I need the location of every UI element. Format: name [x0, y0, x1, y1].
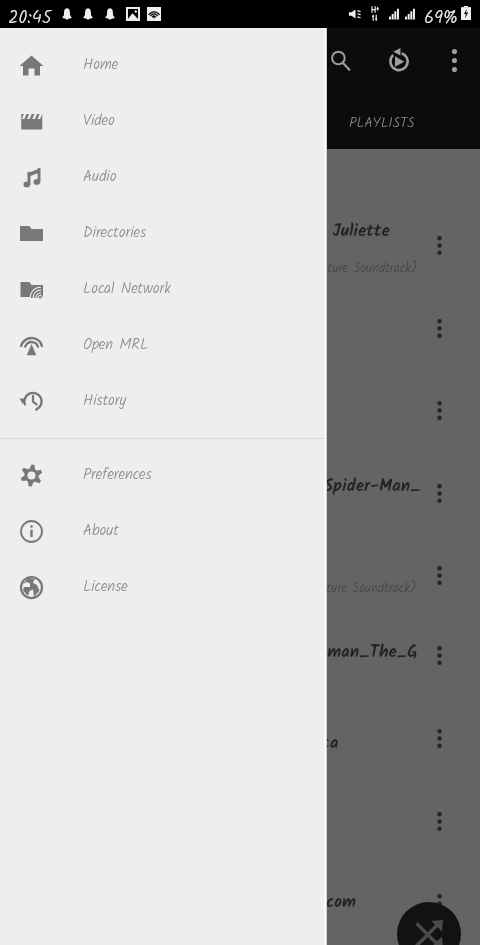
staticText: (Original Motion Picture Soundtrack) — [218, 578, 417, 599]
button[interactable]: Open MRL — [0, 317, 327, 373]
button[interactable]: History — [0, 373, 327, 429]
button[interactable]: PLAYLISTS — [327, 100, 437, 145]
button[interactable]: More options — [430, 36, 478, 84]
staticText: Roméo et Juliette — [256, 218, 390, 245]
button[interactable]: About — [0, 503, 327, 559]
button[interactable]: Play last playlist — [375, 36, 423, 84]
button[interactable]: Item options — [423, 722, 455, 754]
button[interactable] — [0, 780, 480, 862]
button[interactable]: License — [0, 559, 327, 615]
button[interactable] — [0, 862, 480, 944]
staticText: Directories — [83, 221, 147, 245]
staticText: example.com — [261, 889, 356, 916]
button[interactable] — [0, 614, 480, 696]
button[interactable]: Item options — [423, 559, 455, 591]
button[interactable]: Item options — [423, 394, 455, 426]
button[interactable]: Home — [0, 37, 327, 93]
staticText: Preferences — [83, 463, 152, 487]
staticText: Local Network — [83, 277, 172, 301]
button[interactable]: Audio — [0, 149, 327, 205]
button[interactable]: Preferences — [0, 447, 327, 503]
staticText: About — [83, 519, 119, 543]
button[interactable] — [0, 534, 480, 616]
button[interactable]: Local Network — [0, 261, 327, 317]
staticText: Home — [83, 53, 119, 77]
staticText: (Original Motion Picture Soundtrack) — [219, 258, 418, 279]
button[interactable]: Search — [316, 36, 364, 84]
staticText: 69% — [424, 4, 458, 32]
button[interactable]: Item options — [423, 477, 455, 509]
button[interactable]: Shuffle — [397, 902, 461, 945]
button[interactable]: Video — [0, 93, 327, 149]
staticText: Open MRL — [83, 333, 149, 357]
button[interactable]: Item options — [423, 887, 455, 919]
button[interactable] — [0, 204, 480, 286]
button[interactable]: Item options — [423, 805, 455, 837]
button[interactable] — [0, 287, 480, 369]
staticText: Video — [83, 109, 115, 133]
button[interactable]: Item options — [423, 312, 455, 344]
button[interactable] — [0, 369, 480, 451]
staticText: License — [83, 575, 128, 599]
button[interactable] — [0, 697, 480, 779]
staticText: 20:45 — [8, 4, 52, 32]
button[interactable]: Directories — [0, 205, 327, 261]
button[interactable]: Item options — [423, 639, 455, 671]
staticText: Kingsman_The_G — [287, 639, 418, 666]
button[interactable]: Item options — [423, 229, 455, 261]
button[interactable] — [0, 452, 480, 534]
staticText: The Amazing Spider-Man_ — [220, 473, 421, 500]
staticText: History — [83, 389, 127, 413]
staticText: Musica — [288, 730, 339, 757]
staticText: Audio — [83, 165, 117, 189]
staticText: PLAYLISTS — [349, 112, 415, 134]
